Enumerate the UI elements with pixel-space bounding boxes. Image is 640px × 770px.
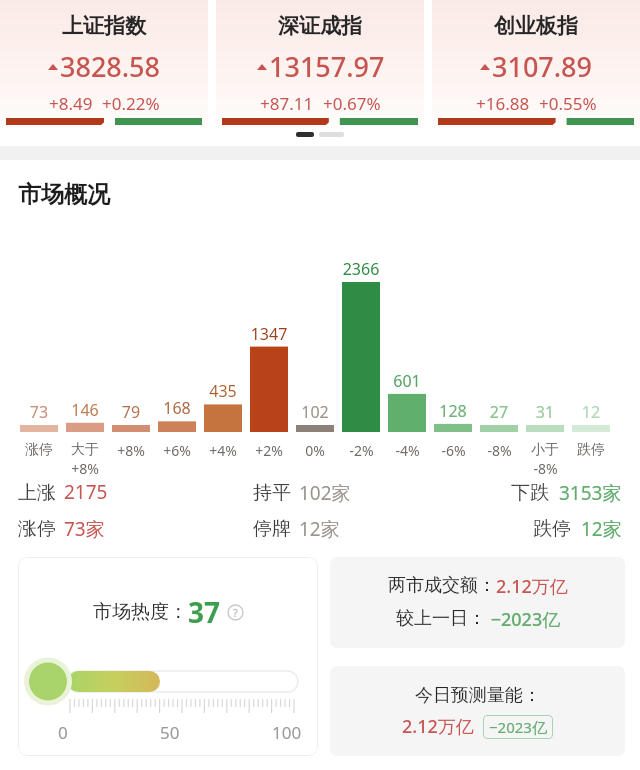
staticText: 13157.97 — [269, 48, 385, 85]
staticText: 跌停 — [533, 517, 571, 541]
staticText: +8% — [71, 459, 99, 478]
staticText: 上证指数 — [62, 13, 146, 39]
staticText: 3107.89 — [492, 48, 593, 85]
staticText: ? — [233, 605, 238, 620]
button[interactable]: 市场热度： — [18, 557, 318, 756]
staticText: -4% — [395, 441, 420, 460]
staticText: 两市成交额： — [388, 574, 496, 597]
staticText: +0.22% — [102, 92, 160, 115]
staticText: −2023亿 — [489, 717, 547, 737]
staticText: 2175家 — [64, 479, 123, 507]
staticText: +0.67% — [323, 92, 381, 115]
staticText: 27 — [480, 401, 518, 423]
staticText: 73家 — [64, 516, 105, 542]
staticText: 79 — [112, 401, 150, 423]
staticText: 涨停 — [18, 517, 56, 541]
staticText: 3153家 — [559, 480, 622, 506]
staticText: 601 — [388, 370, 426, 392]
staticText: 下跌 — [511, 481, 549, 505]
staticText: 2.12万亿 — [402, 714, 474, 739]
staticText: 上涨 — [18, 481, 56, 505]
staticText: 涨停 — [25, 441, 53, 459]
staticText: 12家 — [299, 516, 340, 542]
staticText: 168 — [158, 397, 196, 419]
staticText: 2366 — [342, 258, 380, 280]
staticText: 持平 — [253, 481, 291, 505]
staticText: 0% — [305, 441, 325, 460]
staticText: +2% — [255, 441, 283, 460]
staticText: +6% — [163, 441, 191, 460]
staticText: 50 — [160, 721, 180, 744]
staticText: +4% — [209, 441, 237, 460]
staticText: 2.12万亿 — [496, 574, 568, 599]
staticText: 创业板指 — [494, 13, 578, 39]
staticText: 1347 — [250, 323, 288, 345]
staticText: 102家 — [299, 480, 351, 506]
staticText: -8% — [533, 459, 558, 478]
button[interactable]: 深证成指 — [216, 0, 424, 129]
staticText: 大于 — [71, 441, 99, 459]
staticText: +0.55% — [539, 92, 597, 115]
staticText: -8% — [487, 441, 512, 460]
staticText: 3828.58 — [60, 48, 161, 85]
staticText: 128 — [434, 400, 472, 422]
staticText: 102 — [296, 401, 334, 423]
staticText: 12家 — [581, 516, 622, 542]
staticText: 跌停 — [577, 441, 605, 459]
staticText: 市场概况 — [18, 180, 110, 209]
staticText: -2% — [349, 441, 374, 460]
button[interactable]: 两市成交额： — [330, 557, 625, 648]
staticText: 37 — [188, 593, 221, 631]
staticText: +8% — [117, 441, 145, 460]
staticText: +87.11 — [260, 92, 314, 115]
staticText: 73 — [20, 401, 58, 423]
button[interactable]: 今日预测量能： — [330, 666, 625, 756]
button[interactable]: 上证指数 — [0, 0, 208, 129]
staticText: −2023亿 — [486, 607, 561, 632]
staticText: 0 — [58, 721, 68, 744]
staticText: 435 — [204, 380, 242, 402]
button[interactable]: 帮助 — [227, 604, 244, 621]
staticText: +8.49 — [49, 92, 93, 115]
staticText: 市场热度： — [93, 600, 188, 624]
staticText: 较上一日： — [396, 607, 486, 630]
staticText: 31 — [526, 401, 564, 423]
button[interactable]: 创业板指 — [432, 0, 640, 129]
staticText: 12 — [572, 401, 610, 423]
staticText: +16.88 — [476, 92, 530, 115]
staticText: 深证成指 — [278, 13, 362, 39]
staticText: 停牌 — [253, 517, 291, 541]
staticText: 100 — [272, 721, 302, 744]
staticText: -6% — [441, 441, 466, 460]
staticText: 小于 — [531, 441, 559, 459]
staticText: 146 — [66, 399, 104, 421]
staticText: 今日预测量能： — [415, 684, 541, 707]
